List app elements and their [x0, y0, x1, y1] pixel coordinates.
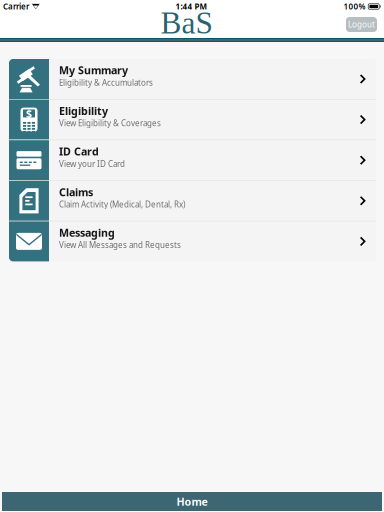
- button[interactable]: Logout: [346, 17, 377, 32]
- staticText: View All Messages and Requests: [59, 240, 181, 250]
- staticText: Claim Activity (Medical, Dental, Rx): [59, 199, 185, 210]
- staticText: Logout: [348, 19, 375, 30]
- staticText: Carrier: [3, 1, 29, 12]
- button[interactable]: $: [9, 100, 376, 140]
- staticText: View Eligibility & Coverages: [59, 118, 161, 128]
- staticText: ID Card: [59, 144, 99, 158]
- button[interactable]: ID Card: [9, 140, 376, 181]
- button[interactable]: Messaging: [9, 221, 376, 261]
- staticText: Home: [176, 494, 207, 509]
- staticText: Eligibility & Accumulators: [59, 77, 153, 88]
- button[interactable]: Claims: [9, 181, 376, 221]
- staticText: View your ID Card: [59, 158, 125, 169]
- button[interactable]: My Summary: [9, 59, 376, 100]
- staticText: 100%: [343, 1, 365, 12]
- staticText: BaS: [160, 6, 212, 40]
- staticText: $: [26, 106, 32, 121]
- staticText: My Summary: [59, 63, 128, 77]
- staticText: Claims: [59, 185, 93, 199]
- button[interactable]: Home: [2, 492, 382, 511]
- staticText: 1:44 PM: [175, 1, 207, 12]
- staticText: Eligibility: [59, 104, 108, 118]
- staticText: Messaging: [59, 225, 115, 240]
